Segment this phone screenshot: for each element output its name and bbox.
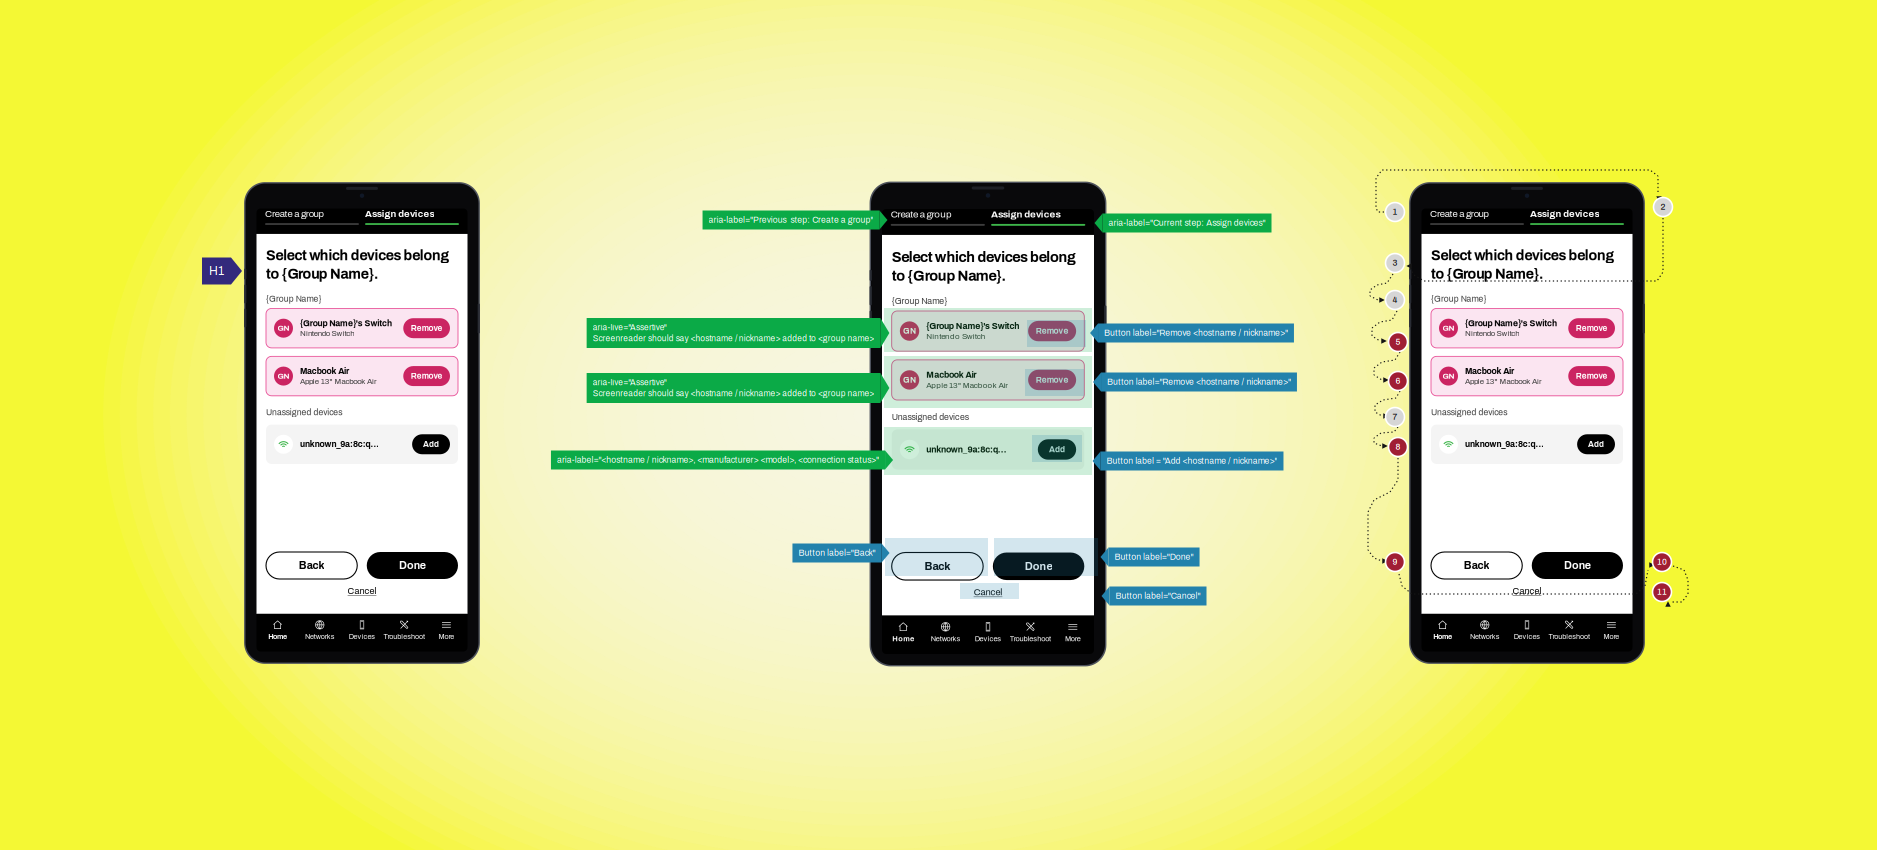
button[interactable]: Assign devices bbox=[991, 209, 1085, 226]
staticText: Devices bbox=[975, 635, 1001, 643]
button[interactable]: Troubleshoot bbox=[383, 620, 425, 640]
staticText: Networks bbox=[305, 633, 335, 640]
button[interactable]: Cancel bbox=[266, 581, 458, 601]
button[interactable]: Add bbox=[1577, 434, 1615, 454]
staticText: Create a group bbox=[1430, 208, 1488, 219]
staticText: {Group Name}'s Switch bbox=[926, 321, 1019, 331]
button[interactable]: Networks bbox=[299, 620, 341, 640]
staticText: Remove bbox=[1036, 375, 1068, 384]
staticText: Home bbox=[1433, 633, 1452, 640]
button[interactable]: Button label="Remove <hostname / nicknam… bbox=[1093, 372, 1297, 391]
staticText: 4 bbox=[1392, 295, 1397, 305]
button[interactable]: Back bbox=[1431, 552, 1522, 579]
staticText: aria-label="<hostname / nickname>, <manu… bbox=[557, 455, 879, 465]
staticText: Button label="Remove <hostname / nicknam… bbox=[1107, 377, 1291, 387]
staticText: Screenreader should say <hostname / nick… bbox=[593, 334, 874, 343]
staticText: Nintendo Switch bbox=[1465, 329, 1519, 338]
staticText: 6 bbox=[1395, 376, 1400, 386]
button[interactable]: Button label="Remove <hostname / nicknam… bbox=[1090, 323, 1294, 342]
staticText: Macbook Air bbox=[1465, 367, 1514, 376]
staticText: Home bbox=[892, 635, 914, 643]
button[interactable]: Devices bbox=[1506, 620, 1548, 640]
button[interactable]: Assign devices bbox=[365, 208, 459, 225]
button[interactable]: Add bbox=[412, 434, 450, 454]
staticText: Macbook Air bbox=[300, 367, 349, 376]
staticText: Select which devices belong bbox=[1431, 248, 1615, 263]
staticText: 11 bbox=[1657, 587, 1667, 597]
button[interactable]: More bbox=[425, 620, 467, 640]
button[interactable]: Home bbox=[256, 620, 299, 640]
staticText: aria-live="Assertive" bbox=[593, 323, 667, 332]
button[interactable]: Button label="Cancel" bbox=[1101, 586, 1206, 605]
button[interactable]: Remove bbox=[403, 318, 450, 338]
staticText: Networks bbox=[931, 635, 960, 643]
staticText: Back bbox=[1464, 560, 1489, 571]
staticText: More bbox=[438, 633, 454, 640]
staticText: Button label="Done" bbox=[1114, 552, 1193, 562]
button[interactable]: Button label="Done" bbox=[1100, 547, 1199, 566]
button[interactable]: Done bbox=[993, 552, 1084, 580]
staticText: Apple 13" Macbook Air bbox=[926, 381, 1008, 390]
staticText: GN bbox=[277, 324, 289, 332]
staticText: {Group Name}'s Switch bbox=[300, 319, 392, 328]
button[interactable]: Remove bbox=[1568, 366, 1615, 386]
staticText: 5 bbox=[1395, 337, 1400, 347]
button[interactable]: Troubleshoot bbox=[1009, 622, 1052, 643]
staticText: Create a group bbox=[265, 208, 323, 219]
staticText: 1 bbox=[1392, 207, 1397, 217]
staticText: {Group Name}'s Switch bbox=[1465, 319, 1557, 328]
button[interactable]: Assign devices bbox=[1530, 208, 1624, 225]
button[interactable]: aria-label="Current step: Assign devices… bbox=[1094, 213, 1271, 232]
button[interactable]: Done bbox=[1532, 552, 1623, 579]
button[interactable]: Button label = "Add <hostname / nickname… bbox=[1092, 451, 1283, 470]
button[interactable]: Remove bbox=[1028, 321, 1076, 341]
button[interactable]: Cancel bbox=[1431, 581, 1623, 601]
staticText: Nintendo Switch bbox=[300, 329, 354, 338]
button[interactable]: Remove bbox=[1568, 318, 1615, 338]
staticText: Networks bbox=[1470, 633, 1500, 640]
staticText: 10 bbox=[1657, 557, 1667, 567]
button[interactable]: Home bbox=[1421, 620, 1464, 640]
staticText: {Group Name} bbox=[892, 296, 947, 306]
staticText: Cancel bbox=[1513, 586, 1541, 596]
button[interactable]: Networks bbox=[924, 622, 967, 643]
staticText: 7 bbox=[1392, 412, 1397, 422]
button[interactable]: Remove bbox=[1028, 370, 1076, 390]
staticText: Back bbox=[925, 560, 950, 572]
button[interactable]: Remove bbox=[403, 366, 450, 386]
staticText: Button label="Cancel" bbox=[1115, 591, 1200, 601]
button[interactable]: Done bbox=[367, 552, 458, 579]
button[interactable]: aria-label="<hostname / nickname>, <manu… bbox=[551, 450, 893, 469]
button[interactable]: Cancel bbox=[892, 582, 1084, 602]
staticText: Button label="Back" bbox=[798, 548, 875, 558]
staticText: Devices bbox=[1514, 633, 1540, 640]
staticText: Troubleshoot bbox=[1548, 633, 1590, 640]
staticText: More bbox=[1065, 635, 1081, 643]
button[interactable]: Create a group bbox=[1430, 208, 1524, 225]
staticText: unknown_9a:8c:q... bbox=[1465, 440, 1544, 449]
staticText: Unassigned devices bbox=[892, 412, 969, 422]
button[interactable]: Create a group bbox=[891, 209, 985, 226]
button[interactable]: Back bbox=[892, 552, 983, 580]
button[interactable]: Devices bbox=[341, 620, 383, 640]
button[interactable]: More bbox=[1052, 622, 1094, 643]
staticText: Troubleshoot bbox=[1010, 635, 1051, 643]
staticText: to {Group Name}. bbox=[892, 268, 1006, 284]
button[interactable]: More bbox=[1590, 620, 1632, 640]
staticText: to {Group Name}. bbox=[266, 266, 378, 282]
staticText: Remove bbox=[1576, 324, 1607, 333]
button[interactable]: Add bbox=[1038, 439, 1076, 460]
staticText: 9 bbox=[1392, 557, 1397, 567]
button[interactable]: aria-label="Previous step: Create a grou… bbox=[702, 210, 887, 229]
button[interactable]: Create a group bbox=[265, 208, 359, 225]
button[interactable]: Devices bbox=[967, 622, 1009, 643]
button[interactable]: Troubleshoot bbox=[1548, 620, 1590, 640]
button[interactable]: Back bbox=[266, 552, 357, 579]
button[interactable]: Home bbox=[882, 622, 924, 643]
staticText: GN bbox=[277, 372, 289, 380]
staticText: Apple 13" Macbook Air bbox=[1465, 377, 1542, 386]
button[interactable]: Button label="Back" bbox=[792, 543, 889, 562]
button[interactable]: Networks bbox=[1464, 620, 1506, 640]
staticText: {Group Name} bbox=[266, 294, 321, 303]
staticText: 8 bbox=[1395, 442, 1400, 452]
